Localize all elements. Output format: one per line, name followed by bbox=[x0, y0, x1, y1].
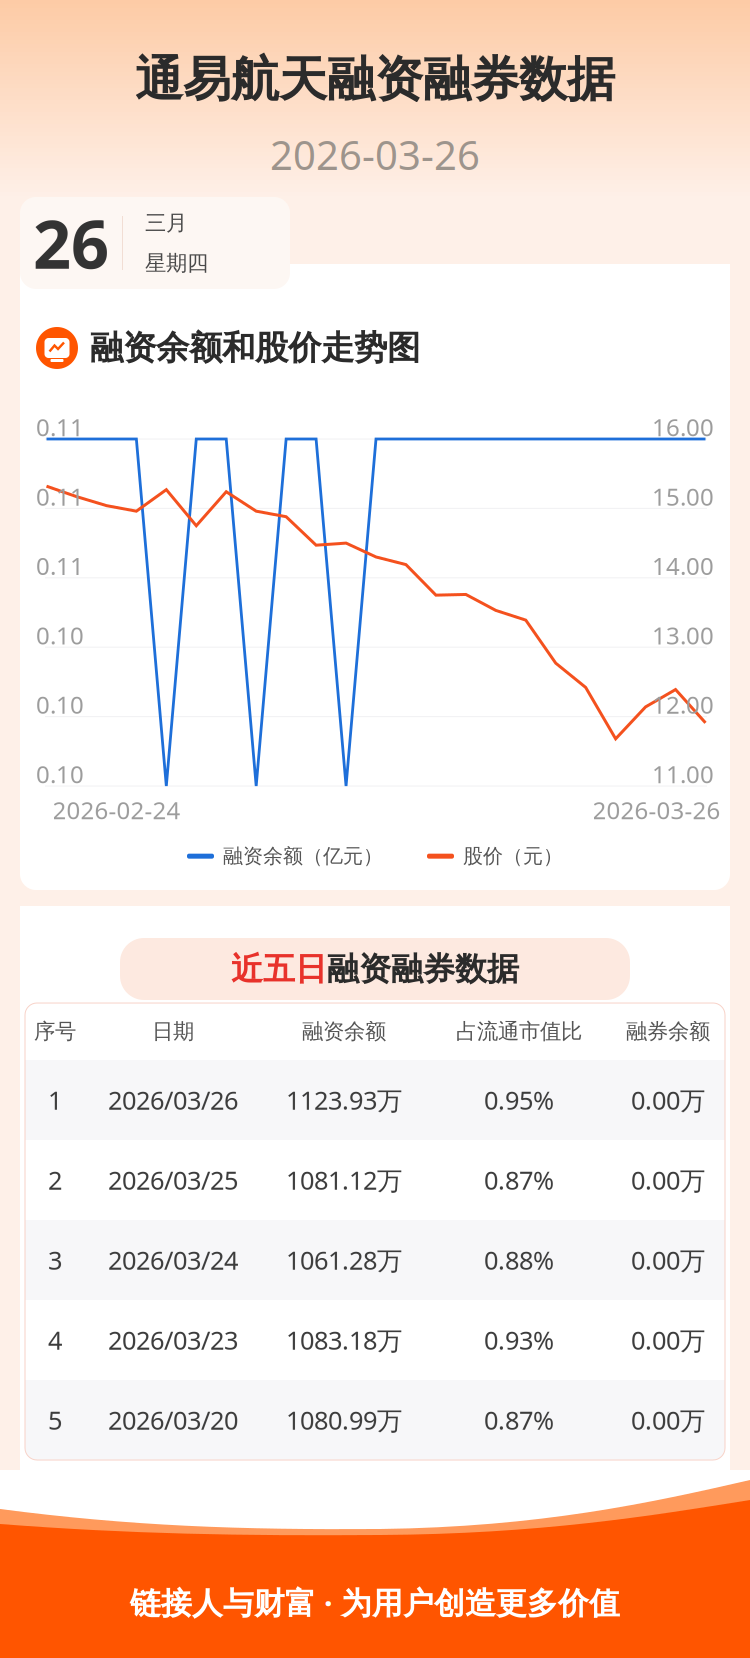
staticText: 融券余额 bbox=[626, 1018, 710, 1045]
staticText: 1123.93万 bbox=[286, 1083, 402, 1117]
staticText: 2026/03/24 bbox=[108, 1243, 238, 1277]
staticText: 近五日 bbox=[231, 949, 327, 989]
staticText: 26 bbox=[33, 199, 109, 287]
staticText: 0.00万 bbox=[631, 1083, 705, 1117]
staticText: 1080.99万 bbox=[286, 1403, 402, 1437]
staticText: 0.95% bbox=[484, 1083, 554, 1117]
staticText: 链接人与财富 · 为用户创造更多价值 bbox=[130, 1582, 620, 1623]
staticText: 0.00万 bbox=[631, 1163, 705, 1197]
staticText: 0.00万 bbox=[631, 1323, 705, 1357]
staticText: 融资融券数据 bbox=[327, 949, 519, 989]
staticText: 融资余额和股价走势图 bbox=[90, 327, 420, 368]
staticText: 0.93% bbox=[484, 1323, 554, 1357]
staticText: 4 bbox=[48, 1323, 62, 1357]
staticText: 2026-03-26 bbox=[270, 128, 480, 181]
staticText: 0.88% bbox=[484, 1243, 554, 1277]
staticText: 5 bbox=[48, 1403, 62, 1437]
staticText: 1061.28万 bbox=[286, 1243, 402, 1277]
staticText: 13.00 bbox=[652, 619, 714, 651]
staticText: 3 bbox=[48, 1243, 62, 1277]
staticText: 2 bbox=[48, 1163, 62, 1197]
staticText: 1083.18万 bbox=[286, 1323, 402, 1357]
staticText: 14.00 bbox=[652, 550, 714, 582]
staticText: 0.87% bbox=[484, 1163, 554, 1197]
staticText: 2026/03/26 bbox=[108, 1083, 238, 1117]
staticText: 通易航天融资融券数据 bbox=[135, 50, 615, 109]
staticText: 三月 bbox=[145, 210, 187, 236]
staticText: 2026-02-24 bbox=[52, 794, 180, 826]
staticText: 星期四 bbox=[145, 250, 208, 276]
staticText: 序号 bbox=[34, 1018, 76, 1045]
staticText: 融资余额 bbox=[302, 1018, 386, 1045]
staticText: 1081.12万 bbox=[286, 1163, 402, 1197]
staticText: 融资余额（亿元） bbox=[223, 844, 383, 868]
staticText: 0.87% bbox=[484, 1403, 554, 1437]
staticText: 占流通市值比 bbox=[456, 1018, 582, 1045]
staticText: 股价（元） bbox=[463, 844, 563, 868]
staticText: 2026/03/20 bbox=[108, 1403, 238, 1437]
staticText: 1 bbox=[48, 1083, 62, 1117]
staticText: 16.00 bbox=[652, 411, 714, 443]
staticText: 0.10 bbox=[36, 619, 84, 651]
staticText: 12.00 bbox=[652, 689, 714, 720]
staticText: 0.11 bbox=[36, 550, 84, 582]
staticText: 0.00万 bbox=[631, 1403, 705, 1437]
staticText: 0.10 bbox=[36, 758, 84, 790]
staticText: 日期 bbox=[152, 1018, 194, 1045]
staticText: 2026/03/25 bbox=[108, 1163, 238, 1197]
staticText: 0.10 bbox=[36, 689, 84, 720]
staticText: 15.00 bbox=[652, 480, 714, 512]
staticText: 0.00万 bbox=[631, 1243, 705, 1277]
staticText: 11.00 bbox=[652, 758, 714, 790]
staticText: 2026/03/23 bbox=[108, 1323, 238, 1357]
staticText: 2026-03-26 bbox=[592, 794, 720, 826]
staticText: 0.11 bbox=[36, 411, 84, 443]
staticText: 0.11 bbox=[36, 480, 84, 512]
